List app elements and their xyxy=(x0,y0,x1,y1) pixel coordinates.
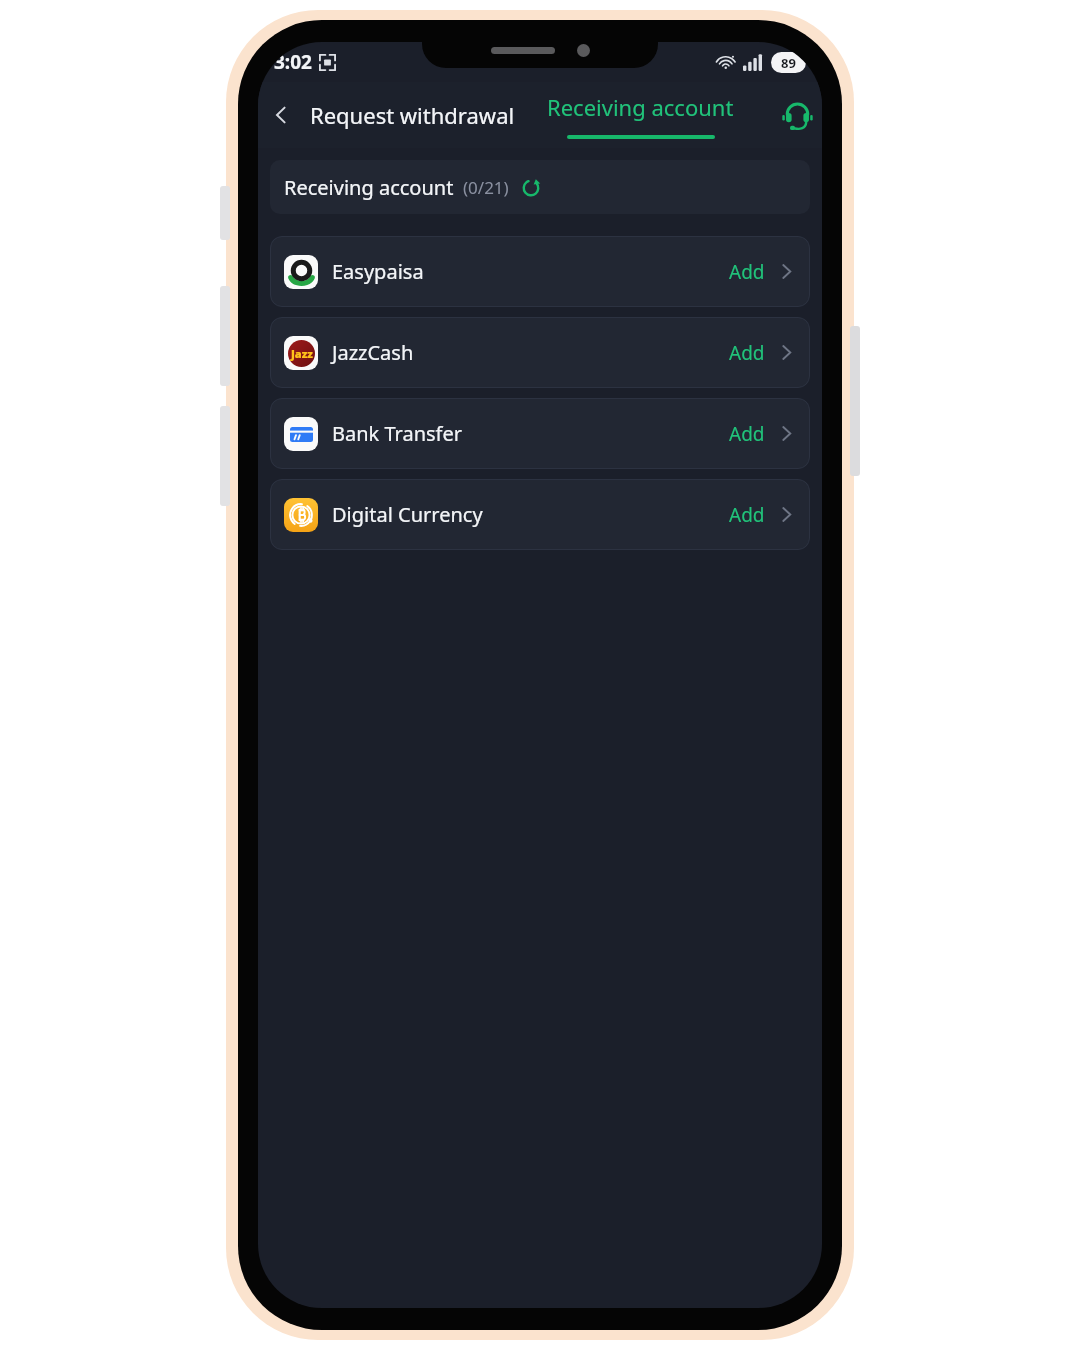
button[interactable]: Request withdrawal xyxy=(304,100,521,130)
staticText: 89 xyxy=(781,54,796,72)
button[interactable]: Back xyxy=(258,92,304,138)
staticText: Jazz xyxy=(291,346,313,361)
button[interactable]: Easypaisa xyxy=(270,236,810,307)
staticText: Add xyxy=(729,340,765,366)
button[interactable]: Customer support xyxy=(774,92,820,138)
staticText: Request withdrawal xyxy=(310,100,515,130)
staticText: Bank Transfer xyxy=(332,420,463,447)
staticText: Add xyxy=(729,502,765,528)
button[interactable]: Receiving account xyxy=(270,160,810,214)
staticText: Easypaisa xyxy=(332,258,424,285)
staticText: Receiving account xyxy=(547,92,734,122)
button[interactable]: Bank Transfer xyxy=(270,398,810,469)
button[interactable]: Jazz xyxy=(270,317,810,388)
staticText: Receiving account xyxy=(284,174,454,201)
button[interactable]: Receiving account xyxy=(547,92,734,139)
staticText: Digital Currency xyxy=(332,501,483,528)
button[interactable]: Digital Currency xyxy=(270,479,810,550)
staticText: 3:02 xyxy=(274,49,312,75)
staticText: (0/21) xyxy=(463,176,509,199)
staticText: Add xyxy=(729,421,765,447)
staticText: Add xyxy=(729,259,765,285)
staticText: JazzCash xyxy=(332,339,414,366)
